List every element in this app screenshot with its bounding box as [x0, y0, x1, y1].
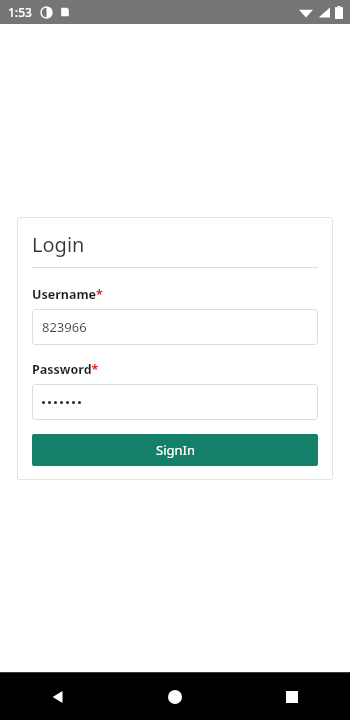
staticText: 1:53: [8, 4, 32, 20]
button[interactable]: [32, 384, 318, 420]
staticText: Password*: [32, 361, 99, 378]
button[interactable]: Back: [0, 673, 116, 720]
button[interactable]: Home: [116, 673, 233, 720]
staticText: 823966: [42, 318, 87, 336]
button[interactable]: Recent apps: [233, 673, 350, 720]
staticText: SignIn: [156, 441, 195, 459]
staticText: Login: [32, 231, 85, 258]
staticText: Username*: [32, 286, 103, 303]
button[interactable]: 823966: [32, 309, 318, 345]
button[interactable]: SignIn: [32, 434, 318, 466]
